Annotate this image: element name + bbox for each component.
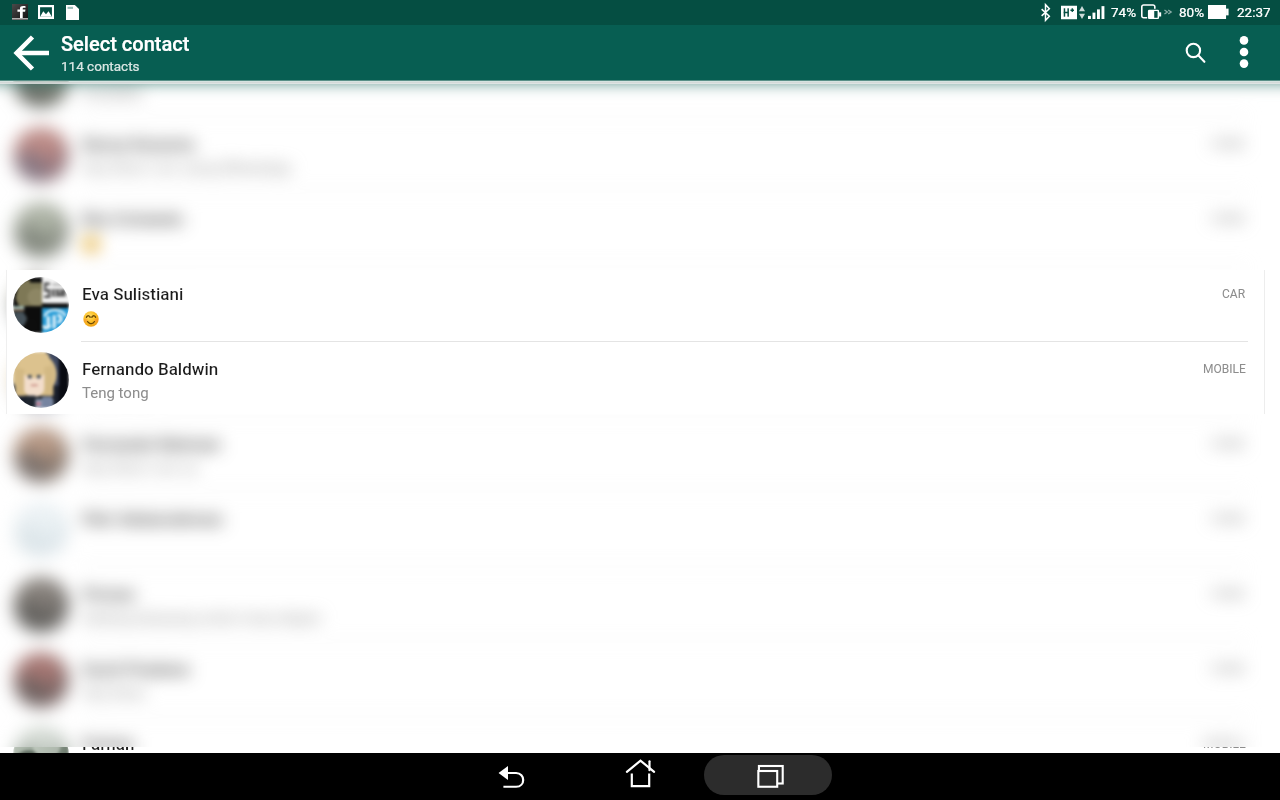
- staticText: Farhan: [82, 734, 135, 754]
- button[interactable]: Fikri Abdurrahman: [0, 492, 1280, 567]
- button[interactable]: Home: [611, 753, 675, 800]
- button[interactable]: Recent apps: [704, 755, 832, 795]
- staticText: 22:37: [1237, 4, 1271, 20]
- button[interactable]: Eka Cristanto: [0, 192, 1280, 267]
- button[interactable]: Firman: [0, 567, 1280, 642]
- staticText: CAR: [1222, 287, 1246, 301]
- staticText: Dwi Aryanto: [82, 59, 174, 79]
- staticText: 80%: [1179, 4, 1205, 20]
- button[interactable]: Eka Cristanto: [0, 192, 1280, 267]
- staticText: Select contact: [61, 32, 190, 55]
- button[interactable]: Fikri Abdurrahman: [0, 492, 1280, 567]
- button[interactable]: Back: [479, 753, 543, 800]
- staticText: Firman: [82, 584, 136, 604]
- staticText: 74%: [1111, 4, 1137, 20]
- staticText: Dessy Kusuma: [82, 134, 195, 154]
- staticText: Fernando Rahman: [82, 434, 221, 454]
- button[interactable]: Dwi Aryanto: [0, 42, 1280, 117]
- staticText: 114 contacts: [61, 58, 140, 74]
- staticText: Fernando Baldwin: [82, 359, 219, 379]
- staticText: Dwi Aryanto: [82, 59, 174, 79]
- button[interactable]: Farhan: [0, 717, 1280, 792]
- button[interactable]: Back: [8, 29, 56, 77]
- staticText: Dessy Kusuma: [82, 134, 195, 154]
- staticText: Gusti Pradana: [82, 659, 190, 679]
- staticText: MOBILE: [1203, 362, 1246, 376]
- staticText: Firman: [82, 584, 136, 604]
- button[interactable]: Fernando Baldwin: [0, 342, 1280, 417]
- button[interactable]: Dwi Aryanto: [0, 42, 1280, 117]
- staticText: Eva Sulistiani: [82, 284, 184, 304]
- staticText: HOME: [1211, 62, 1246, 76]
- button[interactable]: Eva Sulistiani: [0, 267, 1280, 342]
- button[interactable]: Fernando Baldwin: [0, 342, 1280, 417]
- button[interactable]: More options: [1220, 25, 1268, 81]
- staticText: Eka Cristanto: [82, 209, 184, 229]
- button[interactable]: Farhan: [0, 717, 1280, 792]
- button[interactable]: Fernando Rahman: [0, 417, 1280, 492]
- button[interactable]: Gusti Pradana: [0, 642, 1280, 717]
- button[interactable]: Eva Sulistiani: [0, 267, 1280, 342]
- staticText: Farhan: [82, 734, 135, 754]
- staticText: Eka Cristanto: [82, 209, 184, 229]
- staticText: Gusti Pradana: [82, 659, 190, 679]
- staticText: Fikri Abdurrahman: [82, 509, 223, 529]
- staticText: Available: [82, 84, 143, 102]
- button[interactable]: Firman: [0, 567, 1280, 642]
- button[interactable]: Fernando Rahman: [0, 417, 1280, 492]
- button[interactable]: Search: [1172, 25, 1220, 81]
- staticText: Fikri Abdurrahman: [82, 509, 223, 529]
- staticText: MOBILE: [1203, 362, 1246, 376]
- staticText: HOME: [1211, 62, 1246, 76]
- staticText: MOBILE: [1203, 737, 1246, 751]
- staticText: Eva Sulistiani: [82, 284, 184, 304]
- staticText: Teng tong: [82, 384, 149, 402]
- button[interactable]: Dessy Kusuma: [0, 117, 1280, 192]
- staticText: Fernando Rahman: [82, 434, 221, 454]
- staticText: Hey there I am us: [82, 459, 198, 477]
- staticText: Teng tong: [82, 384, 149, 402]
- staticText: MOBILE: [1203, 737, 1246, 751]
- staticText: Fernando Baldwin: [82, 359, 219, 379]
- button[interactable]: Gusti Pradana: [0, 642, 1280, 717]
- staticText: CAR: [1222, 287, 1246, 301]
- button[interactable]: Dessy Kusuma: [0, 117, 1280, 192]
- staticText: Hey there I am us: [82, 459, 198, 477]
- staticText: Available: [82, 84, 143, 102]
